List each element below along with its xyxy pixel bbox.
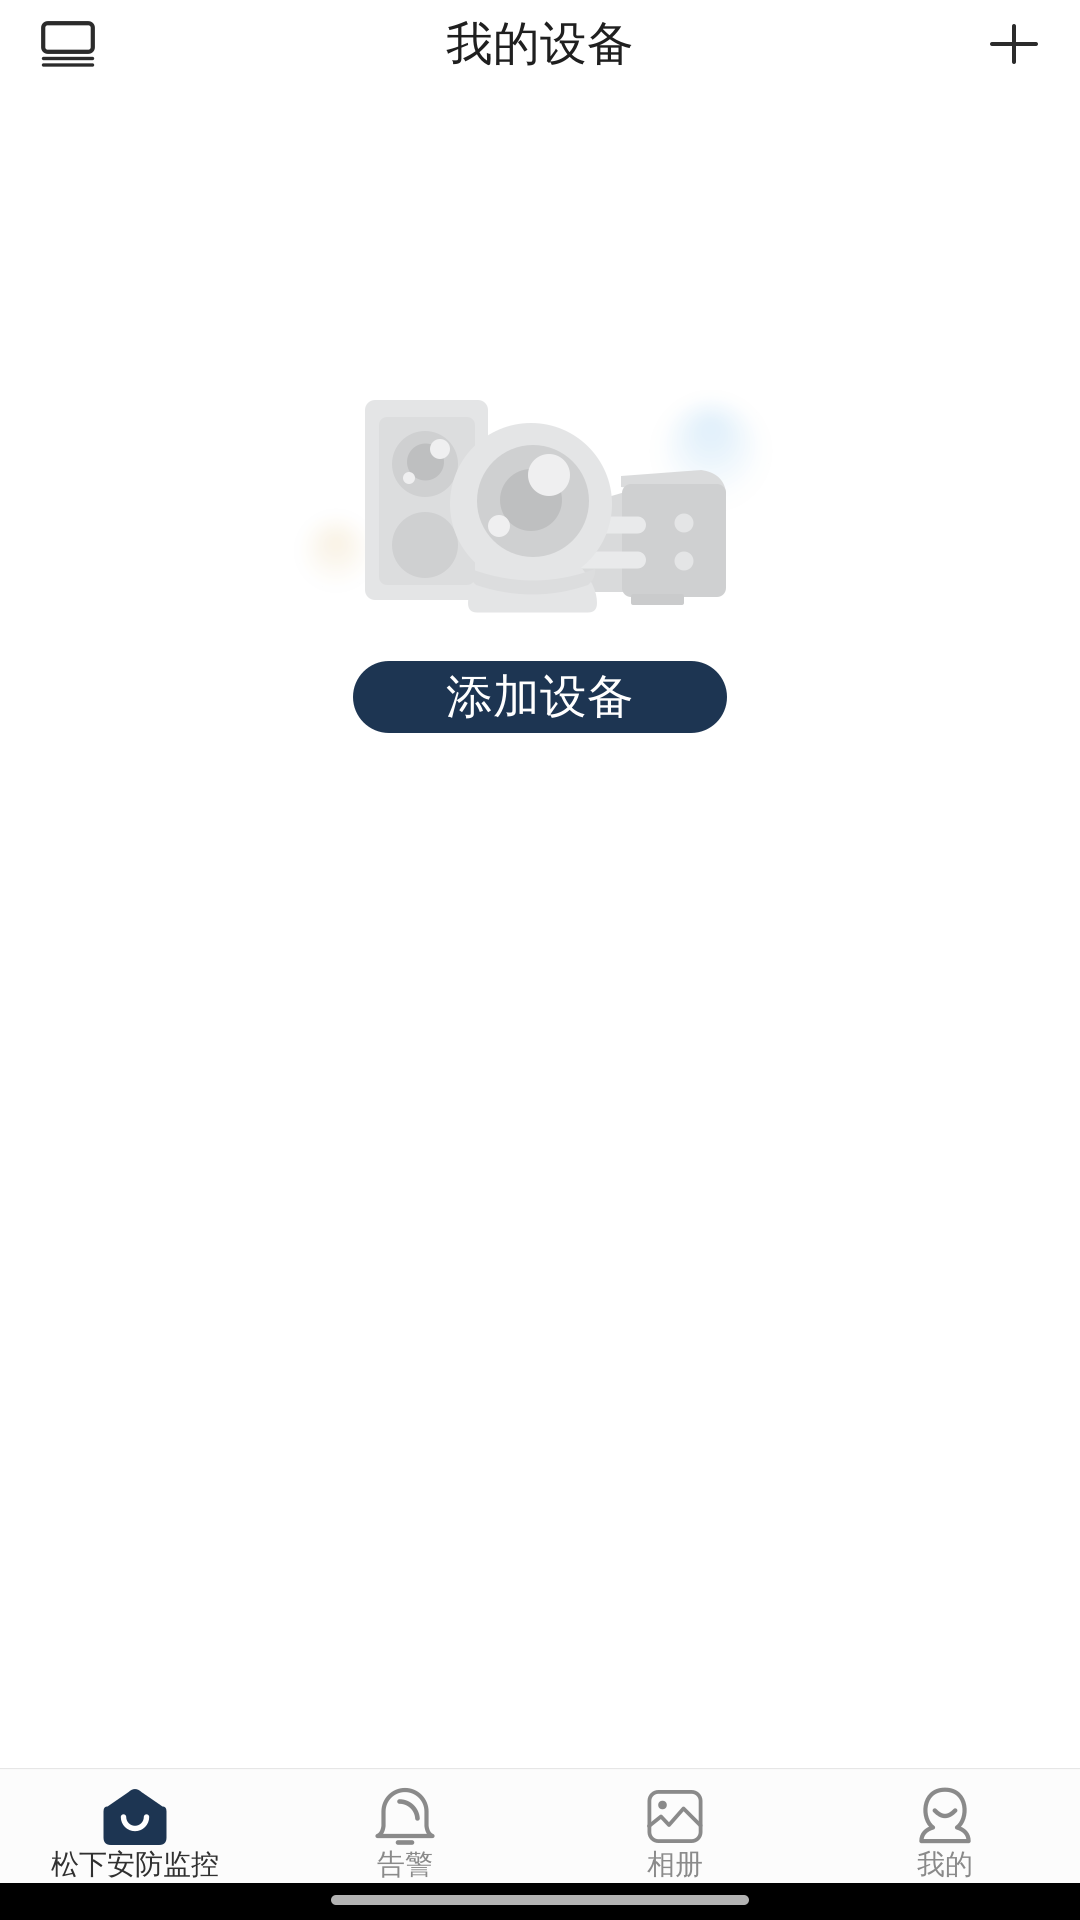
staticText: 告警: [377, 1847, 433, 1882]
button[interactable]: 松下安防监控: [0, 1769, 270, 1883]
button[interactable]: 设备列表: [9, 0, 129, 90]
button[interactable]: 我的: [810, 1769, 1080, 1883]
staticText: 相册: [647, 1847, 703, 1882]
staticText: 添加设备: [446, 668, 634, 726]
button[interactable]: 添加设备: [959, 0, 1069, 89]
staticText: 我的设备: [446, 15, 634, 73]
staticText: 松下安防监控: [51, 1847, 219, 1882]
button[interactable]: 相册: [540, 1769, 810, 1883]
button[interactable]: 告警: [270, 1769, 540, 1883]
button[interactable]: 添加设备: [353, 661, 727, 733]
staticText: 我的: [917, 1847, 973, 1882]
